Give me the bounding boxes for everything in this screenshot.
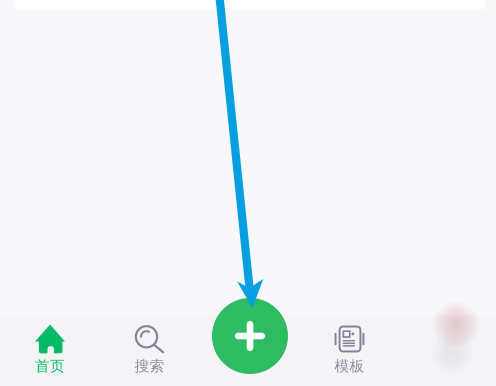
staticText: 首页 [35,357,65,375]
button[interactable]: 新建 [212,298,288,374]
staticText: 模板 [334,357,364,375]
button[interactable]: 我的 [399,315,496,386]
button[interactable]: 搜索 [100,315,199,386]
button[interactable]: 模板 [300,315,399,386]
staticText: 搜索 [134,357,164,375]
button[interactable]: 首页 [0,315,100,386]
